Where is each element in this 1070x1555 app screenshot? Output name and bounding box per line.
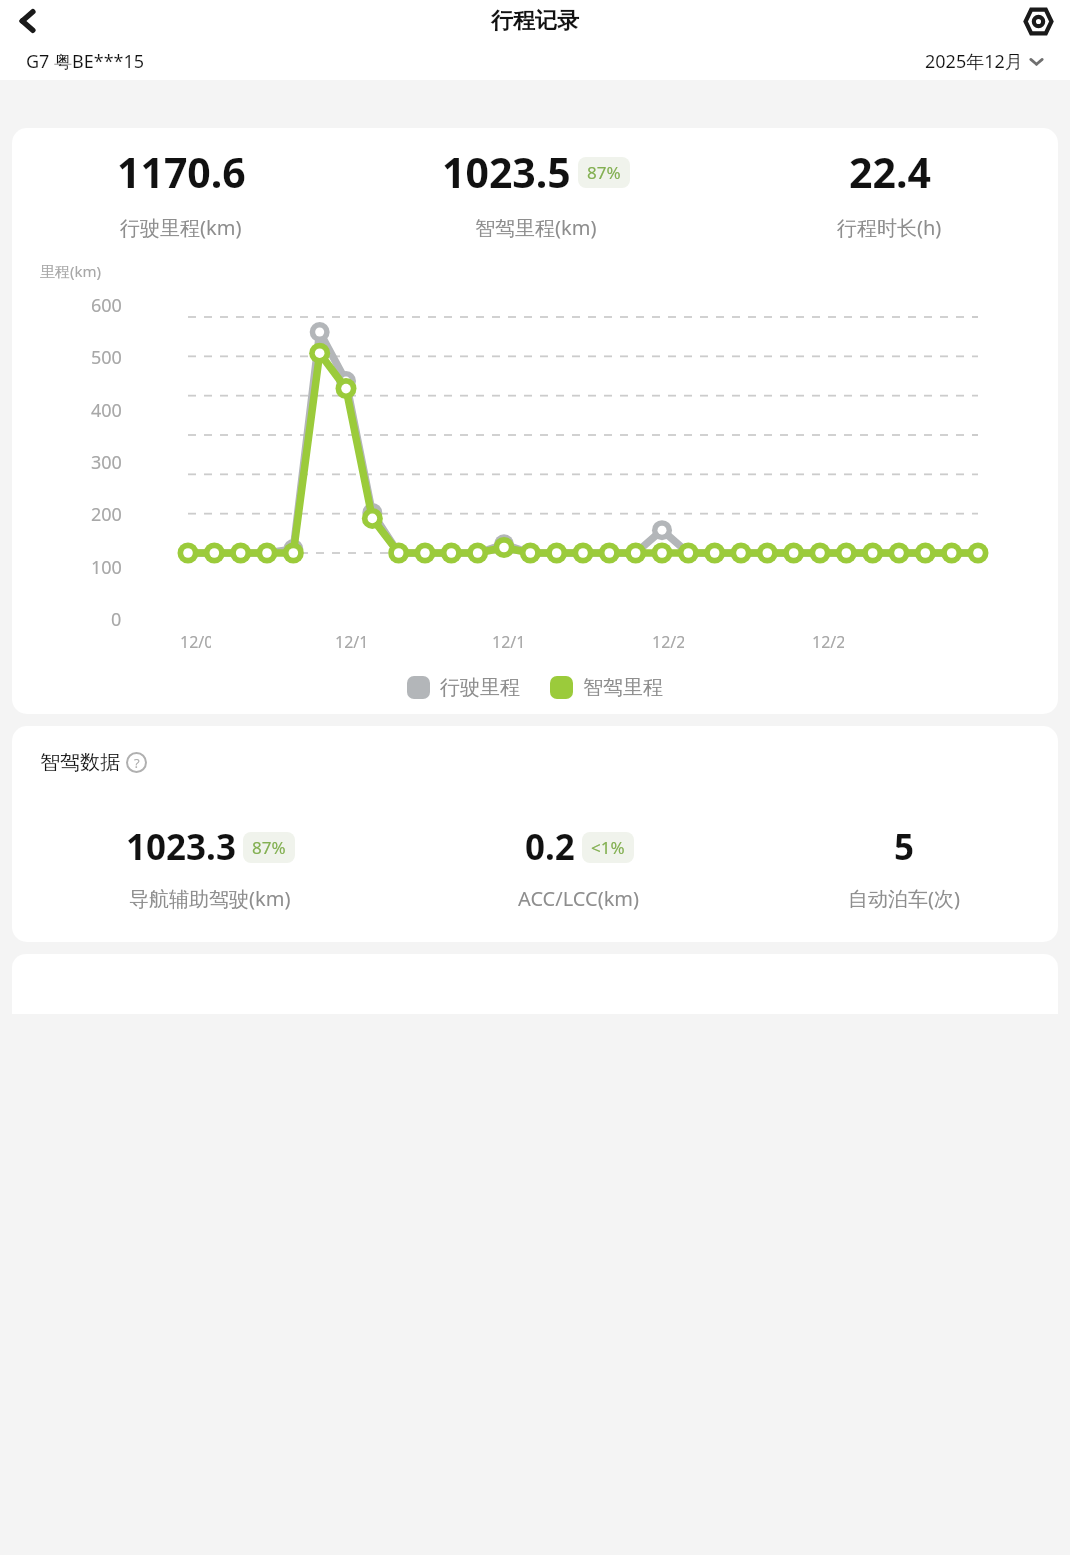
button[interactable]: Back: [8, 1, 48, 41]
staticText: 行程时长(h): [837, 214, 942, 241]
staticText: 12/20: [652, 631, 684, 653]
staticText: 12/25: [812, 631, 844, 653]
staticText: 里程(km): [40, 261, 102, 281]
staticText: 200: [91, 502, 122, 527]
staticText: 12/10: [335, 631, 366, 653]
staticText: 500: [91, 345, 122, 370]
button[interactable]: 1170.6: [12, 144, 350, 241]
staticText: 1170.6: [117, 144, 246, 200]
staticText: 0: [111, 607, 122, 632]
staticText: 100: [91, 555, 122, 580]
staticText: 300: [91, 450, 122, 475]
staticText: ?: [134, 754, 140, 772]
staticText: ACC/LCC(km): [518, 885, 640, 912]
staticText: 自动泊车(次): [848, 885, 960, 912]
staticText: 智驾里程(km): [475, 214, 597, 241]
staticText: 12/05: [180, 631, 211, 653]
button[interactable]: Vehicle settings: [1018, 1, 1058, 41]
staticText: 行驶里程: [440, 675, 520, 700]
staticText: 5: [894, 823, 915, 871]
staticText: G7 粤BE***15: [26, 49, 145, 74]
staticText: 智驾数据: [40, 750, 120, 775]
button[interactable]: 1023.5: [350, 144, 721, 241]
staticText: 87%: [252, 836, 286, 859]
staticText: 1023.5: [442, 144, 571, 200]
button[interactable]: 智驾数据: [40, 750, 147, 775]
button[interactable]: 行驶里程: [407, 675, 520, 700]
button[interactable]: 2025年12月: [925, 49, 1044, 74]
button[interactable]: 1023.3: [12, 823, 408, 912]
button[interactable]: 智驾里程: [550, 675, 663, 700]
staticText: 导航辅助驾驶(km): [129, 885, 291, 912]
staticText: 智驾里程: [583, 675, 663, 700]
button[interactable]: 5: [750, 823, 1058, 912]
button[interactable]: 22.4: [721, 144, 1058, 241]
staticText: 87%: [587, 161, 621, 184]
staticText: 2025年12月: [925, 49, 1023, 74]
staticText: 400: [91, 398, 122, 423]
staticText: 600: [91, 293, 122, 318]
staticText: 12/15: [492, 631, 524, 653]
button[interactable]: 0.2: [408, 823, 750, 912]
staticText: 行程记录: [491, 7, 579, 35]
staticText: 1023.3: [126, 823, 236, 871]
staticText: 行驶里程(km): [120, 214, 242, 241]
staticText: 22.4: [849, 144, 931, 200]
staticText: 0.2: [525, 823, 575, 871]
staticText: <1%: [591, 836, 625, 859]
